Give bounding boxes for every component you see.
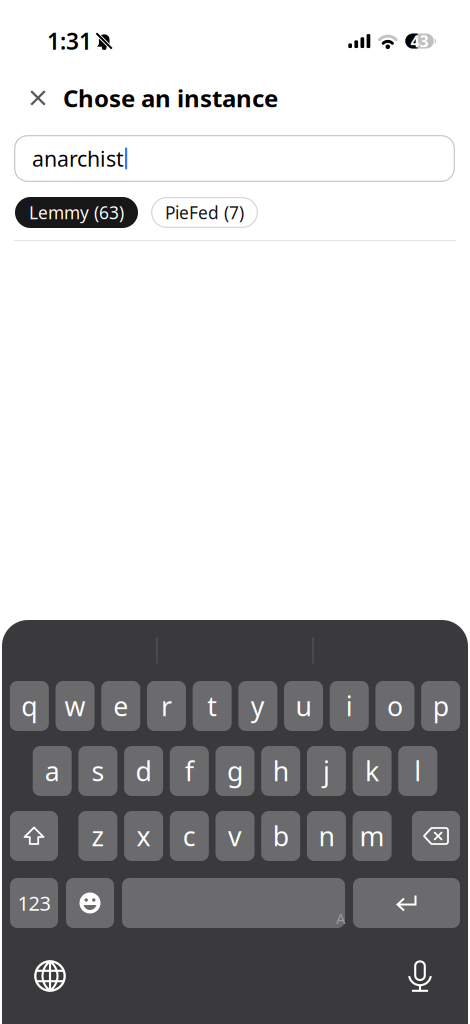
staticText: d [136,753,152,789]
button[interactable]: s [78,746,117,796]
button[interactable]: h [261,746,300,796]
staticText: a [45,753,60,789]
button[interactable]: x [124,811,163,861]
button[interactable]: Dictation [408,960,432,992]
button[interactable]: 123 [10,878,58,928]
staticText: o [387,688,403,724]
staticText: y [251,688,265,724]
button[interactable]: o [375,681,414,731]
staticText: z [91,818,104,854]
button[interactable]: w [55,681,94,731]
staticText: h [273,753,289,789]
staticText: 43 [411,30,429,52]
button[interactable]: Close [30,90,46,106]
staticText: p [433,688,449,724]
button[interactable]: f [170,746,209,796]
button[interactable]: z [78,811,117,861]
staticText: 123 [17,890,50,916]
staticText: f [185,753,194,789]
button[interactable]: Shift [10,811,58,861]
staticText: j [323,753,330,789]
staticText: l [414,753,421,789]
staticText: PieFed (7) [165,201,244,224]
button[interactable]: b [261,811,300,861]
button[interactable]: j [307,746,346,796]
staticText: u [295,688,311,724]
staticText: m [360,818,385,854]
staticText: A [336,908,345,928]
staticText: r [161,688,172,724]
staticText: k [365,753,379,789]
button[interactable]: Next keyboard [34,960,66,992]
staticText: g [227,753,243,789]
button[interactable]: i [330,681,369,731]
staticText: x [137,818,151,854]
button[interactable]: Return [353,878,460,928]
button[interactable]: l [398,746,437,796]
button[interactable]: c [170,811,209,861]
staticText: 1:31 [47,26,92,56]
staticText: q [21,688,37,724]
button[interactable]: PieFed (7) [151,197,258,228]
staticText: t [207,688,217,724]
staticText: n [318,818,334,854]
button[interactable]: Lemmy (63) [15,197,138,228]
staticText: b [273,818,289,854]
staticText: Chose an instance [63,82,278,114]
button[interactable]: space [122,878,345,928]
button[interactable]: m [353,811,392,861]
staticText: i [346,688,353,724]
button[interactable]: anarchist [14,135,455,182]
staticText: Lemmy (63) [29,201,124,224]
button[interactable]: k [353,746,392,796]
staticText: e [113,688,128,724]
button[interactable]: g [215,746,254,796]
button[interactable]: u [284,681,323,731]
button[interactable]: Emoji [66,878,114,928]
button[interactable]: q [10,681,49,731]
button[interactable]: n [307,811,346,861]
button[interactable]: r [147,681,186,731]
staticText: anarchist [32,144,124,173]
staticText: w [64,688,85,724]
button[interactable]: Delete [412,811,460,861]
button[interactable]: t [193,681,232,731]
button[interactable]: p [421,681,460,731]
button[interactable]: d [124,746,163,796]
staticText: c [183,818,196,854]
button[interactable]: e [101,681,140,731]
button[interactable]: v [215,811,254,861]
staticText: v [228,818,242,854]
button[interactable]: a [33,746,72,796]
staticText: s [91,753,104,789]
button[interactable]: y [238,681,277,731]
